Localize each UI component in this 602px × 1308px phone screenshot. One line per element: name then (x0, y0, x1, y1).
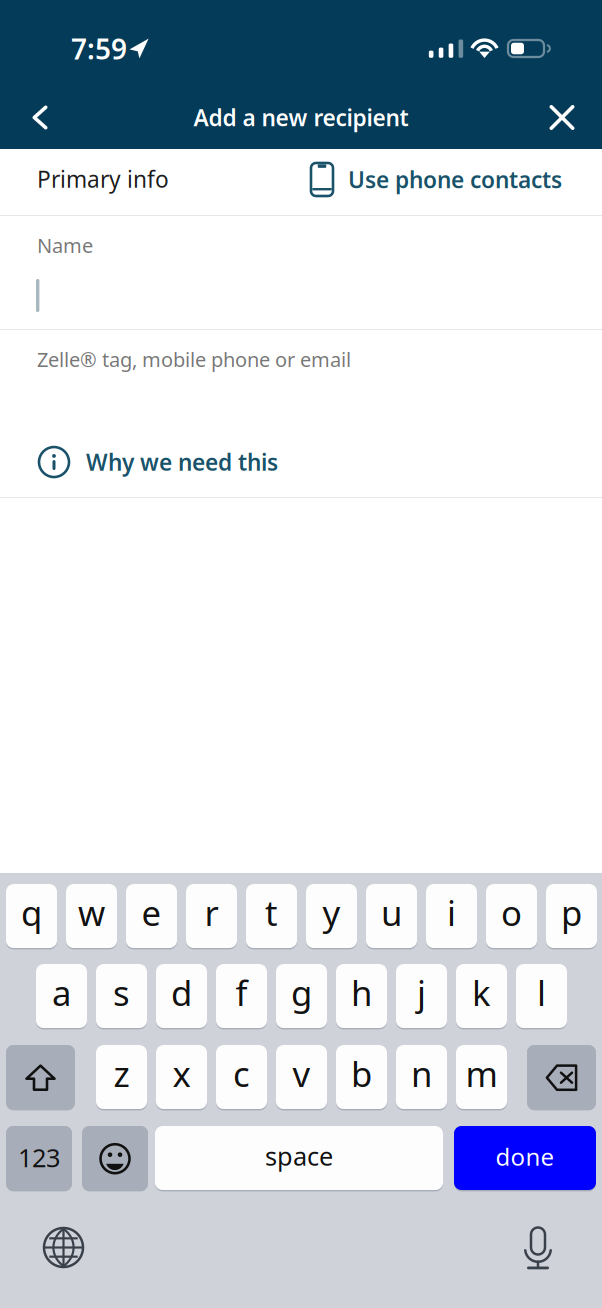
staticText: Why we need this (86, 447, 278, 477)
button[interactable]: s (96, 964, 147, 1029)
button[interactable]: d (156, 964, 207, 1029)
button[interactable]: Next keyboard (40, 1224, 87, 1271)
button[interactable]: Back (12, 91, 68, 144)
staticText: z (113, 1050, 129, 1096)
button[interactable]: j (396, 964, 447, 1029)
staticText: u (381, 889, 402, 935)
staticText: t (265, 889, 278, 935)
button[interactable]: Shift (6, 1046, 75, 1110)
staticText: x (172, 1050, 190, 1096)
button[interactable]: done (454, 1126, 596, 1191)
button[interactable]: g (276, 964, 327, 1029)
staticText: done (495, 1141, 554, 1172)
staticText: j (417, 969, 426, 1015)
button[interactable]: Emoji (82, 1127, 148, 1191)
button[interactable]: Close (534, 91, 590, 144)
staticText: Primary info (37, 164, 169, 194)
button[interactable]: x (156, 1045, 207, 1110)
button[interactable]: w (66, 884, 117, 949)
staticText: Name (37, 232, 93, 259)
button[interactable]: Dictate (523, 1220, 553, 1262)
staticText: g (291, 969, 312, 1015)
staticText: Use phone contacts (348, 164, 562, 194)
button[interactable]: o (486, 884, 537, 949)
staticText: b (351, 1050, 372, 1096)
button[interactable]: Why we need this (39, 447, 278, 477)
staticText: n (411, 1050, 432, 1096)
button[interactable]: a (36, 964, 87, 1029)
button[interactable]: e (126, 884, 177, 949)
button[interactable]: y (306, 884, 357, 949)
staticText: s (113, 969, 130, 1015)
button[interactable]: f (216, 964, 267, 1029)
staticText: w (78, 889, 105, 935)
button[interactable]: i (426, 884, 477, 949)
staticText: y (322, 889, 340, 935)
button[interactable]: u (366, 884, 417, 949)
button[interactable]: n (396, 1045, 447, 1110)
staticText: i (447, 889, 456, 935)
button[interactable]: h (336, 964, 387, 1029)
staticText: a (52, 969, 71, 1015)
button[interactable]: Delete (527, 1046, 596, 1110)
button[interactable]: m (456, 1045, 507, 1110)
button[interactable]: v (276, 1045, 327, 1110)
staticText: v (292, 1050, 310, 1096)
button[interactable]: t (246, 884, 297, 949)
staticText: o (501, 889, 522, 935)
button[interactable]: Use phone contacts (311, 163, 562, 196)
staticText: p (561, 889, 582, 935)
staticText: Add a new recipient (193, 102, 408, 132)
staticText: l (537, 969, 546, 1015)
staticText: f (235, 969, 247, 1015)
staticText: 7:59 (71, 30, 127, 67)
staticText: c (233, 1050, 250, 1096)
staticText: h (351, 969, 372, 1015)
staticText: Zelle® tag, mobile phone or email (37, 346, 351, 373)
staticText: r (204, 889, 218, 935)
button[interactable]: q (6, 884, 57, 949)
button[interactable]: l (516, 964, 567, 1029)
staticText: q (21, 889, 42, 935)
staticText: d (171, 969, 192, 1015)
staticText: e (141, 889, 161, 935)
button[interactable]: z (96, 1045, 147, 1110)
staticText: k (472, 969, 491, 1015)
button[interactable]: 123 (6, 1126, 72, 1191)
button[interactable]: k (456, 964, 507, 1029)
staticText: space (265, 1139, 333, 1173)
staticText: m (465, 1050, 497, 1096)
button[interactable]: r (186, 884, 237, 949)
button[interactable]: c (216, 1045, 267, 1110)
button[interactable]: b (336, 1045, 387, 1110)
button[interactable]: p (546, 884, 597, 949)
button[interactable]: space (155, 1126, 443, 1191)
staticText: 123 (18, 1141, 60, 1174)
